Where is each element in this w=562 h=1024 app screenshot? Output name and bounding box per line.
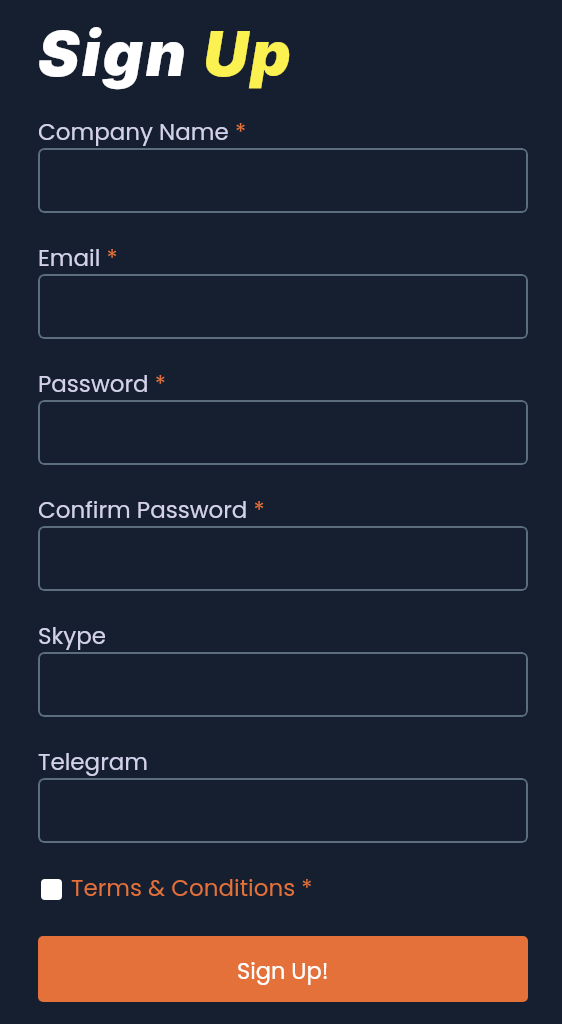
button[interactable]: Telegram — [38, 778, 528, 843]
staticText: Email * — [38, 242, 118, 274]
staticText: Company Name * — [38, 116, 247, 148]
button[interactable]: Company Name — [38, 148, 528, 213]
button[interactable]: Sign Up! — [38, 936, 528, 1002]
staticText: Telegram — [38, 746, 148, 778]
staticText: Sign Up! — [237, 955, 329, 986]
button[interactable]: Email — [38, 274, 528, 339]
staticText: Terms & Conditions * — [71, 872, 313, 904]
button[interactable]: Confirm Password — [38, 526, 528, 591]
button[interactable]: Password — [38, 400, 528, 465]
button[interactable]: Skype — [38, 652, 528, 717]
staticText: Sign Up — [38, 16, 294, 91]
staticText: Confirm Password * — [38, 494, 265, 526]
staticText: Skype — [38, 620, 107, 652]
staticText: Password * — [38, 368, 166, 400]
other: Accept terms and conditions — [41, 879, 62, 900]
button[interactable]: Accept terms and conditions — [41, 871, 313, 905]
